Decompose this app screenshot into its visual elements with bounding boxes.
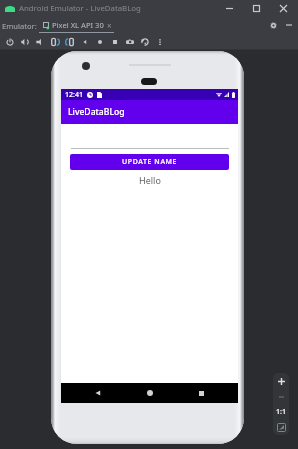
button[interactable]: Fit to window [273,419,289,435]
button[interactable]: UPDATE NAME [70,154,229,170]
button[interactable]: Close [270,0,297,17]
button[interactable]: Minimize [216,0,243,17]
button[interactable]: Zoom out [273,390,289,404]
button[interactable]: Home [135,383,165,403]
button[interactable]: Rotate left [47,33,62,50]
button[interactable]: Volume up [17,33,32,50]
button[interactable]: Pixel XL API 30 [43,17,112,33]
staticText: UPDATE NAME [122,157,178,167]
button[interactable]: Volume down [32,33,47,50]
button[interactable]: Power [2,33,17,50]
button[interactable]: Settings [266,17,281,33]
button[interactable]: Overview [186,383,216,403]
staticText: Android Emulator - LiveDataBLog [19,3,141,14]
button[interactable]: More [152,33,167,50]
staticText: 1:1 [276,407,286,417]
button[interactable]: Screenshot [122,33,137,50]
button[interactable]: Overview [107,33,122,50]
button[interactable]: Zoom in [273,373,289,390]
button[interactable]: Rotate right [62,33,77,50]
staticText: × [107,20,112,31]
button[interactable]: Hide [281,17,296,33]
staticText: LiveDataBLog [68,106,125,118]
button[interactable]: Rotate screen [137,33,152,50]
staticText: 12:41 [65,90,83,100]
button[interactable]: Home [92,33,107,50]
button[interactable]: Back [77,33,92,50]
button[interactable]: Back [83,383,113,403]
staticText: Hello [139,174,161,186]
staticText: Pixel XL API 30 [52,20,104,30]
staticText: Emulator: [2,21,37,31]
button[interactable]: Actual size [273,404,289,419]
button[interactable]: Maximize [243,0,270,17]
